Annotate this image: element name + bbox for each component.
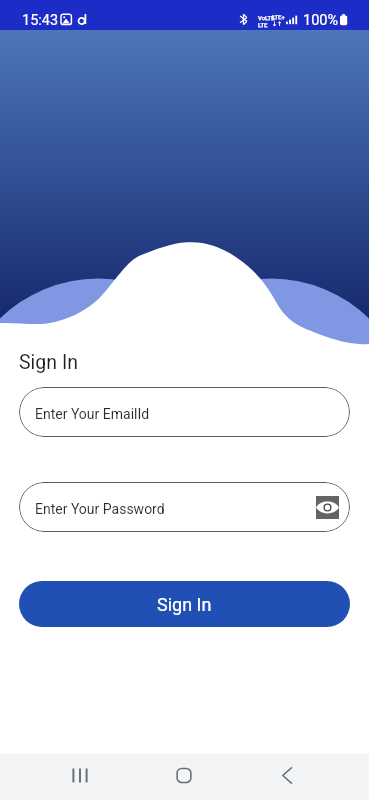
staticText: 100% [303,12,339,29]
button[interactable]: Recent apps [55,754,105,800]
button[interactable]: Sign In [19,581,350,627]
button[interactable]: Enter Your Password [19,482,350,532]
button[interactable]: Home [159,754,209,800]
staticText: Enter Your Password [35,501,165,517]
staticText: Enter Your EmailId [35,406,150,422]
button[interactable]: Back [262,754,312,800]
button[interactable]: Show password [316,496,339,519]
staticText: Sign In [19,351,78,374]
button[interactable]: Enter Your EmailId [19,387,350,437]
staticText: VoLTE [258,14,275,21]
staticText: LTE [258,21,268,28]
staticText: 15:43 [22,12,59,29]
staticText: Sign In [157,594,212,615]
staticText: ↓↑ [272,20,283,27]
staticText: LTE+ [272,13,285,20]
